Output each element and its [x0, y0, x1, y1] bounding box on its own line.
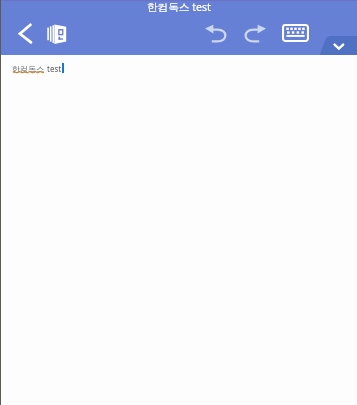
button[interactable]: Undo — [193, 15, 225, 47]
button[interactable]: Back — [8, 18, 38, 48]
button[interactable]: Keyboard — [277, 20, 313, 46]
button[interactable]: Document info — [45, 23, 67, 45]
staticText: 한컴독스 test — [147, 0, 211, 14]
staticText: 한컴독스 — [12, 64, 44, 74]
button[interactable]: Expand toolbar — [318, 36, 357, 55]
staticText: test — [47, 63, 62, 74]
button[interactable]: Redo — [234, 15, 266, 47]
button[interactable]: Document editing area — [0, 55, 357, 405]
